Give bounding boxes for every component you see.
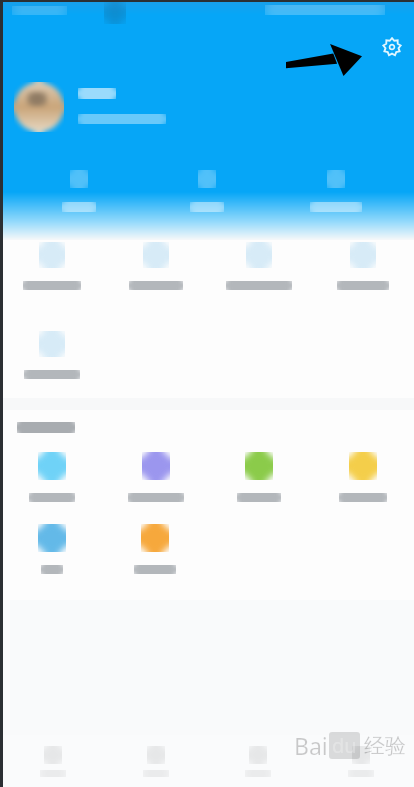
button[interactable]: [286, 168, 386, 214]
button[interactable]: [0, 236, 103, 296]
button[interactable]: [103, 518, 206, 580]
button[interactable]: [29, 168, 129, 214]
button[interactable]: [311, 446, 414, 508]
staticText: 经验: [364, 733, 406, 759]
button[interactable]: [157, 168, 257, 214]
button[interactable]: [0, 325, 103, 385]
button[interactable]: [106, 742, 206, 781]
button[interactable]: [0, 446, 103, 508]
button[interactable]: [0, 518, 103, 580]
button[interactable]: [208, 742, 308, 781]
button[interactable]: [207, 446, 310, 508]
staticText: du: [332, 732, 357, 759]
button[interactable]: [104, 446, 207, 508]
button[interactable]: [311, 236, 414, 296]
button[interactable]: [207, 236, 310, 296]
button[interactable]: [104, 236, 207, 296]
button[interactable]: [14, 82, 64, 132]
button[interactable]: Settings: [376, 31, 408, 63]
staticText: Bai: [294, 730, 328, 761]
button[interactable]: [3, 742, 103, 781]
button[interactable]: [311, 742, 411, 781]
